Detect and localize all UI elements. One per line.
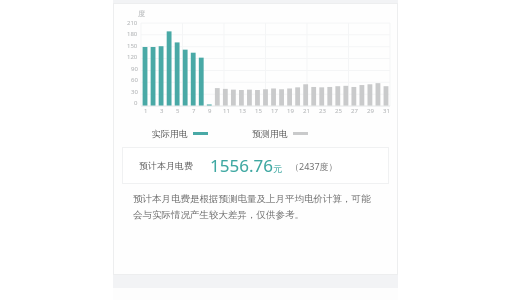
staticText: 19 — [287, 107, 294, 115]
button[interactable]: 实际用电 — [150, 126, 210, 141]
staticText: 21 — [303, 107, 310, 115]
staticText: 25 — [335, 107, 342, 115]
staticText: 17 — [271, 107, 278, 115]
staticText: 度 — [138, 9, 145, 18]
staticText: 3 — [160, 107, 164, 115]
staticText: 5 — [176, 107, 180, 115]
staticText: 13 — [239, 107, 246, 115]
staticText: 预计本月电费 — [139, 160, 193, 171]
staticText: 210 — [127, 19, 138, 27]
staticText: 30 — [131, 88, 138, 96]
button[interactable]: 预测用电 — [250, 126, 310, 141]
staticText: 29 — [367, 107, 374, 115]
staticText: 11 — [223, 107, 230, 115]
staticText: 60 — [131, 76, 138, 84]
staticText: 15 — [255, 107, 262, 115]
staticText: 预测用电 — [252, 128, 288, 139]
staticText: 27 — [351, 107, 358, 115]
staticText: 0 — [134, 99, 138, 107]
staticText: 31 — [383, 107, 390, 115]
staticText: 1 — [144, 107, 148, 115]
staticText: 90 — [131, 65, 138, 73]
staticText: 9 — [208, 107, 212, 115]
staticText: 23 — [319, 107, 326, 115]
staticText: 7 — [192, 107, 196, 115]
button[interactable]: 预计本月电费 — [122, 147, 389, 184]
staticText: （2437度） — [290, 160, 338, 172]
staticText: 预计本月电费是根据预测电量及上月平均电价计算，可能会与实际情况产生较大差异，仅供… — [133, 193, 378, 221]
staticText: 120 — [127, 53, 138, 61]
staticText: 实际用电 — [152, 128, 188, 139]
staticText: 180 — [127, 30, 138, 38]
staticText: 150 — [127, 42, 138, 50]
staticText: 1556.76元 — [210, 154, 282, 177]
